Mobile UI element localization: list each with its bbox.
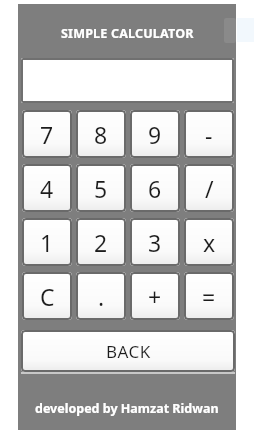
staticText: 2 [94, 227, 108, 258]
button[interactable]: / [184, 164, 234, 212]
button[interactable]: + [130, 272, 180, 320]
staticText: 8 [94, 119, 108, 150]
staticText: 3 [148, 227, 162, 258]
staticText: developed by Hamzat Ridwan [35, 400, 219, 417]
staticText: 1 [40, 227, 54, 258]
button[interactable] [21, 58, 234, 103]
button[interactable]: - [184, 110, 234, 158]
button[interactable]: 3 [130, 218, 180, 266]
staticText: 7 [40, 119, 54, 150]
button[interactable]: . [76, 272, 126, 320]
button[interactable]: 5 [76, 164, 126, 212]
staticText: . [98, 281, 105, 312]
button[interactable]: = [184, 272, 234, 320]
button[interactable]: 1 [22, 218, 72, 266]
staticText: 9 [148, 119, 162, 150]
button[interactable]: 2 [76, 218, 126, 266]
button[interactable]: 9 [130, 110, 180, 158]
staticText: SIMPLE CALCULATOR [61, 25, 194, 42]
staticText: / [205, 173, 214, 204]
staticText: 4 [40, 173, 54, 204]
button[interactable]: 6 [130, 164, 180, 212]
staticText: = [202, 281, 216, 312]
staticText: C [40, 281, 55, 312]
button[interactable]: 7 [22, 110, 72, 158]
staticText: 6 [148, 173, 162, 204]
button[interactable]: 4 [22, 164, 72, 212]
staticText: + [148, 281, 162, 312]
button[interactable]: 8 [76, 110, 126, 158]
staticText: x [203, 227, 216, 258]
staticText: 5 [94, 173, 108, 204]
button[interactable]: C [22, 272, 72, 320]
button[interactable]: x [184, 218, 234, 266]
staticText: - [205, 119, 213, 150]
button[interactable]: BACK [21, 330, 235, 372]
staticText: BACK [106, 340, 151, 363]
